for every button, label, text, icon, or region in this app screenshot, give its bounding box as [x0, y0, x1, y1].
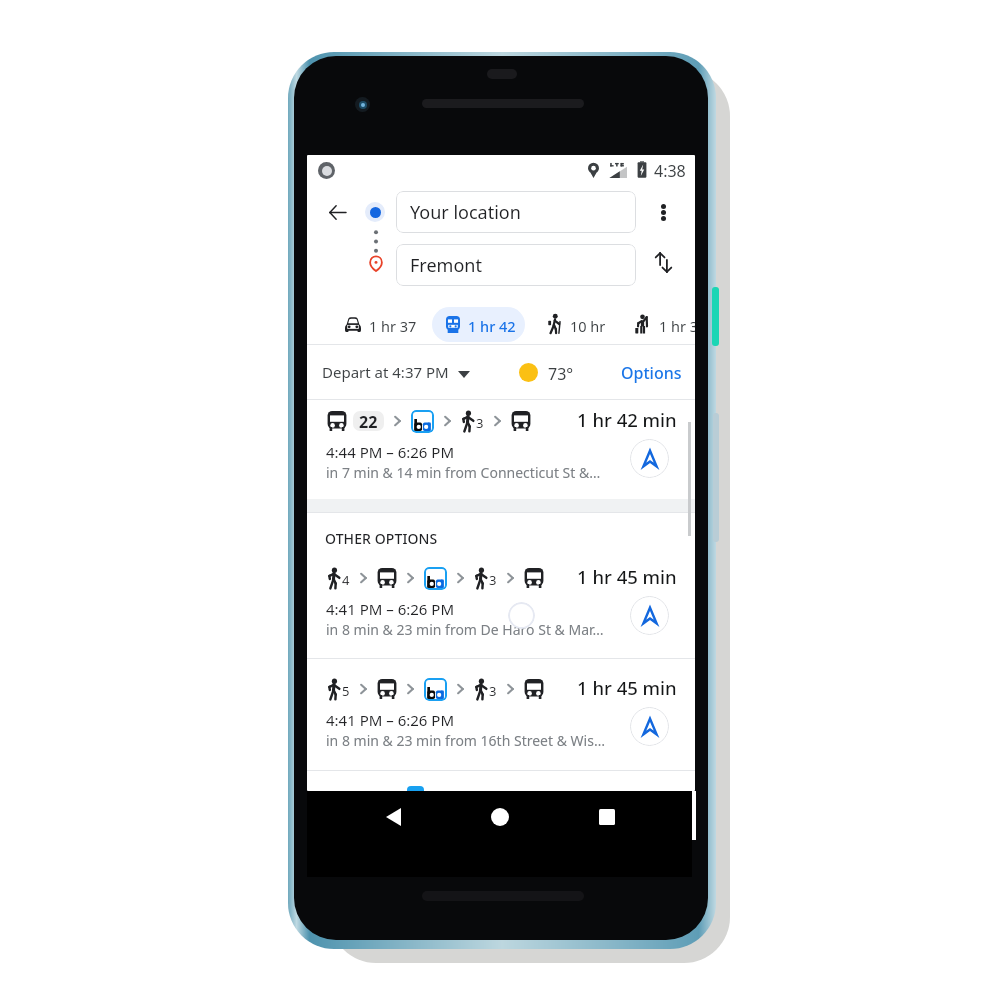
- button[interactable]: Home: [491, 808, 509, 826]
- button[interactable]: Fremont: [396, 244, 636, 286]
- staticText: 4:41 PM – 6:26 PM: [326, 710, 454, 730]
- button[interactable]: Swap start and destination: [641, 240, 685, 284]
- button[interactable]: 4: [307, 557, 695, 657]
- button[interactable]: [337, 307, 429, 343]
- button[interactable]: [543, 307, 631, 343]
- button[interactable]: 5: [307, 668, 695, 768]
- staticText: 4:38: [654, 160, 686, 182]
- staticText: 4:44 PM – 6:26 PM: [326, 442, 454, 462]
- staticText: in 8 min & 23 min from 16th Street & Wis…: [326, 731, 605, 750]
- staticText: 4: [342, 571, 350, 589]
- staticText: Options: [621, 362, 682, 384]
- staticText: 22: [359, 411, 378, 431]
- button[interactable]: Depart at 4:37 PM: [313, 354, 479, 390]
- staticText: Your location: [410, 200, 521, 225]
- button[interactable]: Start navigation: [630, 596, 669, 635]
- button[interactable]: More options: [641, 190, 685, 234]
- staticText: OTHER OPTIONS: [325, 529, 438, 548]
- staticText: 1 hr 42: [468, 316, 516, 336]
- staticText: Depart at 4:37 PM: [322, 362, 449, 382]
- staticText: in 8 min & 23 min from De Haro St & Mar…: [326, 620, 604, 639]
- staticText: 1 hr 45 min: [577, 564, 677, 589]
- button[interactable]: Your location: [396, 191, 636, 233]
- button[interactable]: Back: [386, 808, 401, 826]
- staticText: 4:41 PM – 6:26 PM: [326, 599, 454, 619]
- staticText: 1 hr 42 min: [577, 407, 677, 432]
- staticText: 1 hr 37: [369, 316, 417, 336]
- button[interactable]: 22: [307, 400, 695, 500]
- button[interactable]: Start navigation: [630, 439, 669, 478]
- staticText: 3: [489, 571, 497, 589]
- button[interactable]: Back: [315, 190, 360, 235]
- staticText: 3: [476, 414, 484, 432]
- staticText: 1 hr 45 min: [577, 675, 677, 700]
- staticText: 10 hr: [570, 316, 606, 336]
- button[interactable]: [432, 307, 525, 342]
- staticText: 5: [342, 682, 350, 700]
- button[interactable]: Options: [612, 354, 691, 392]
- staticText: in 7 min & 14 min from Connecticut St &…: [326, 463, 601, 482]
- staticText: 1 hr 3: [659, 316, 695, 336]
- staticText: 3: [489, 682, 497, 700]
- staticText: Fremont: [410, 253, 482, 278]
- staticText: 73°: [548, 363, 574, 385]
- button[interactable]: Recents: [599, 809, 615, 825]
- button[interactable]: [631, 307, 695, 343]
- button[interactable]: Start navigation: [630, 707, 669, 746]
